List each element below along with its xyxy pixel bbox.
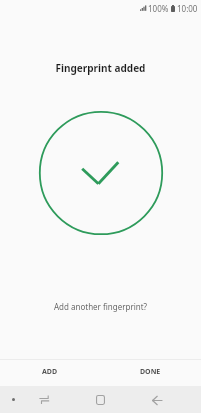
button[interactable]: Back: [142, 390, 171, 411]
button[interactable]: Hide keyboard: [3, 393, 23, 406]
staticText: DONE: [140, 367, 161, 377]
staticText: 10:00: [177, 3, 198, 14]
button[interactable]: Home: [86, 389, 115, 410]
staticText: Fingerprint added: [0, 61, 201, 75]
staticText: ADD: [42, 367, 58, 377]
button[interactable]: ADD: [0, 360, 100, 386]
button[interactable]: Recent apps: [29, 389, 58, 410]
staticText: 100%: [148, 3, 169, 14]
staticText: Add another fingerprint?: [0, 301, 201, 312]
button[interactable]: DONE: [100, 360, 201, 386]
